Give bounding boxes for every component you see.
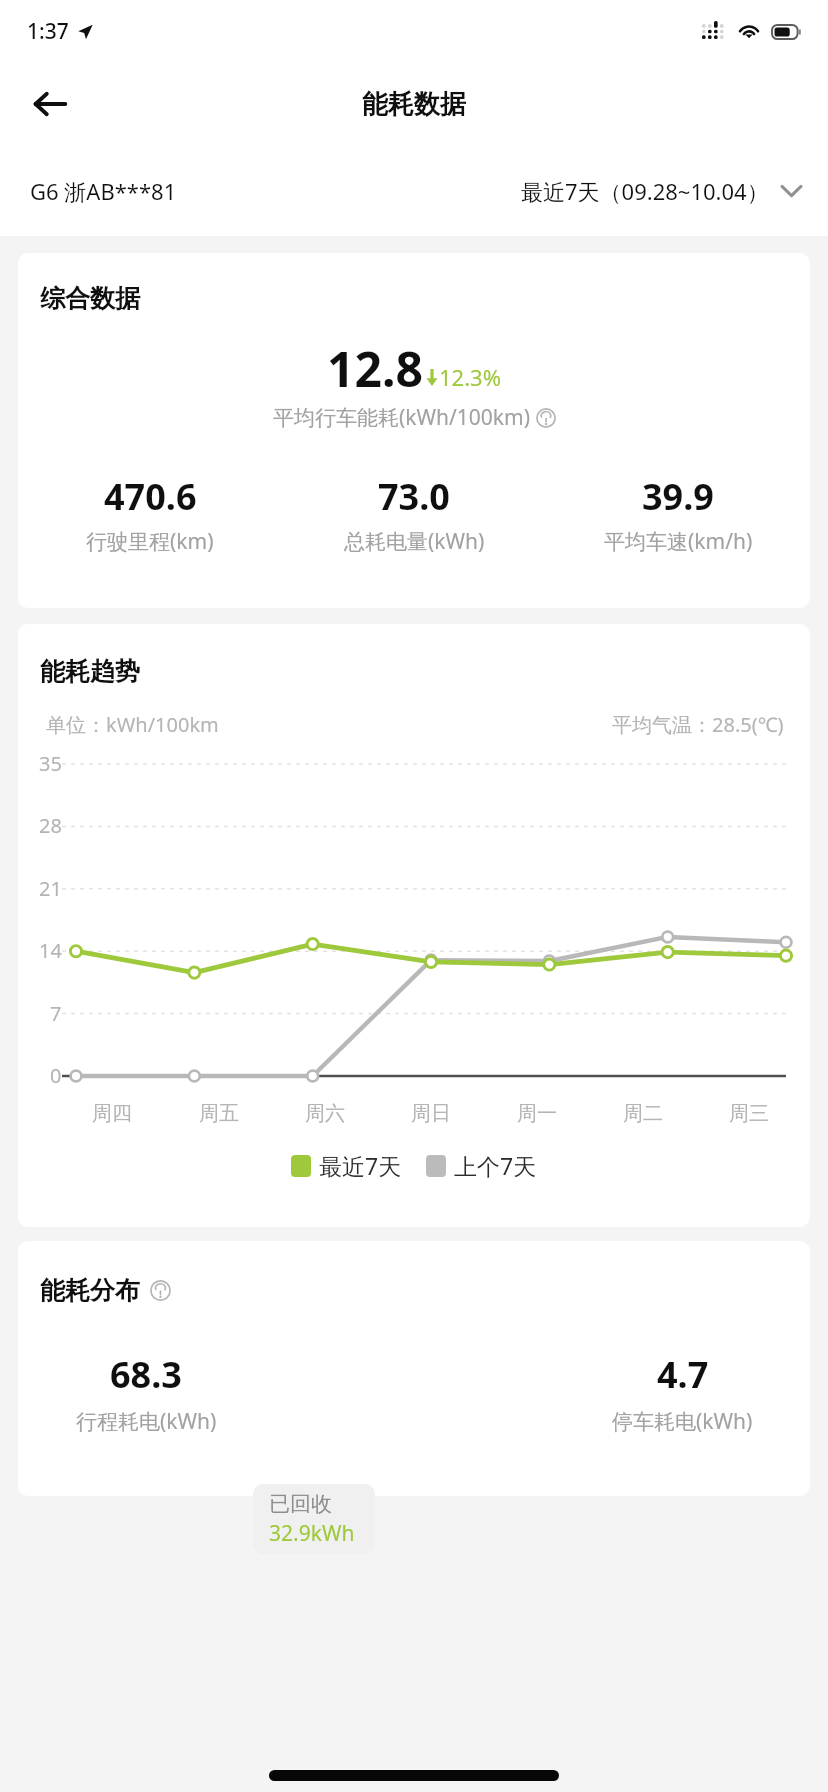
- button[interactable]: 最近7天: [291, 1150, 402, 1181]
- staticText: 周六: [305, 1101, 345, 1126]
- staticText: 73.0: [378, 472, 450, 521]
- button[interactable]: Back: [20, 74, 80, 134]
- staticText: 28: [39, 812, 62, 839]
- staticText: 470.6: [104, 472, 197, 521]
- staticText: 平均车速(km/h): [604, 527, 753, 556]
- staticText: 单位：kWh/100km: [46, 711, 219, 738]
- staticText: 停车耗电(kWh): [612, 1407, 753, 1436]
- button[interactable]: 最近7天（09.28~10.04）: [521, 176, 802, 206]
- button[interactable]: 上个7天: [426, 1150, 537, 1181]
- staticText: 14: [39, 937, 62, 964]
- staticText: 21: [39, 875, 62, 902]
- staticText: 平均行车能耗(kWh/100km): [273, 403, 531, 432]
- staticText: 周一: [517, 1101, 557, 1126]
- staticText: 32.9kWh: [269, 1519, 355, 1548]
- staticText: 行驶里程(km): [86, 527, 214, 556]
- staticText: 0: [50, 1062, 62, 1089]
- staticText: 能耗分布: [40, 1275, 140, 1306]
- staticText: 最近7天（09.28~10.04）: [521, 176, 769, 206]
- staticText: 12.8: [327, 336, 423, 401]
- staticText: 平均气温：28.5(℃): [612, 711, 784, 738]
- staticText: 68.3: [110, 1350, 182, 1399]
- staticText: 1:37: [27, 17, 69, 46]
- staticText: 能耗趋势: [40, 656, 140, 687]
- staticText: 行程耗电(kWh): [76, 1407, 217, 1436]
- staticText: 已回收: [269, 1491, 332, 1517]
- staticText: 12.3%: [439, 362, 501, 392]
- staticText: 35: [39, 750, 62, 777]
- staticText: 周二: [623, 1101, 663, 1126]
- staticText: 4.7: [657, 1350, 709, 1399]
- staticText: 周日: [411, 1101, 451, 1126]
- staticText: 最近7天: [319, 1150, 402, 1181]
- staticText: 周五: [199, 1101, 239, 1126]
- button[interactable]: G6 浙AB***81: [30, 176, 177, 206]
- staticText: 总耗电量(kWh): [344, 527, 485, 556]
- staticText: 39.9: [642, 472, 714, 521]
- staticText: 7: [50, 1000, 62, 1027]
- staticText: 综合数据: [40, 283, 140, 314]
- staticText: 上个7天: [454, 1150, 537, 1181]
- staticText: 周三: [729, 1101, 769, 1126]
- staticText: 能耗数据: [362, 88, 466, 121]
- staticText: 周四: [92, 1101, 132, 1126]
